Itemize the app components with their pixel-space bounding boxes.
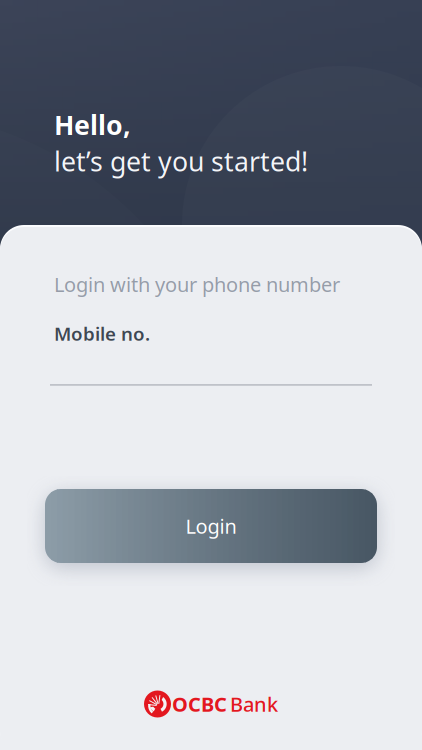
staticText: let’s get you started! [54,143,308,179]
staticText: Bank [230,691,278,717]
staticText: Mobile no. [54,321,150,346]
staticText: OCBC [172,691,227,717]
staticText: Login with your phone number [54,271,340,298]
button[interactable]: Login [45,489,377,563]
staticText: Hello, [54,107,131,142]
staticText: Login [185,513,236,539]
